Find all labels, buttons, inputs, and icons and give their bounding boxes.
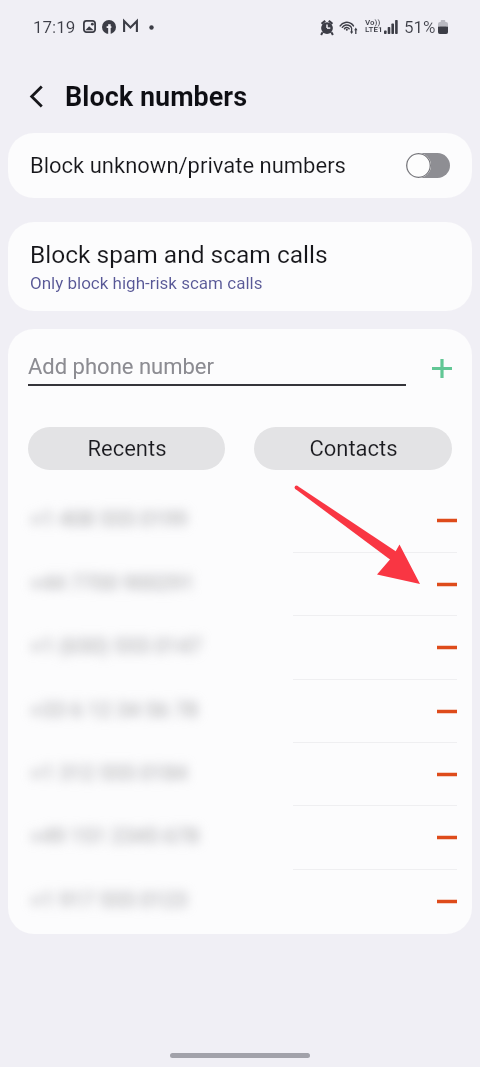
- staticText: +1 917 555 0123: [30, 888, 188, 913]
- button[interactable]: Add number: [420, 346, 464, 390]
- staticText: +44 7700 900291: [30, 571, 194, 596]
- staticText: +33 6 12 34 56 78: [30, 698, 198, 723]
- staticText: Contacts: [309, 436, 398, 462]
- button[interactable]: +1 408 555 0199: [8, 488, 472, 551]
- staticText: 17:19: [33, 17, 76, 37]
- button[interactable]: Remove number: [430, 694, 464, 728]
- staticText: Block numbers: [65, 81, 248, 113]
- staticText: +49 151 2345 678: [30, 824, 200, 849]
- button[interactable]: Contacts: [254, 427, 452, 470]
- staticText: +1 408 555 0199: [30, 507, 188, 532]
- button[interactable]: Remove number: [430, 503, 464, 537]
- button[interactable]: +1 312 555 0184: [8, 742, 472, 805]
- button[interactable]: Recents: [28, 427, 225, 470]
- button[interactable]: Remove number: [430, 884, 464, 918]
- button[interactable]: Remove number: [430, 630, 464, 664]
- button[interactable]: +44 7700 900291: [8, 552, 472, 615]
- staticText: +1 (650) 555 0147: [30, 634, 202, 659]
- button[interactable]: Remove number: [430, 757, 464, 791]
- button[interactable]: Block spam and scam calls: [8, 222, 472, 311]
- button[interactable]: Block unknown/private numbers: [8, 133, 472, 198]
- staticText: +1 312 555 0184: [30, 761, 188, 786]
- button[interactable]: +1 (650) 555 0147: [8, 615, 472, 678]
- button[interactable]: Remove number: [430, 567, 464, 601]
- button[interactable]: +49 151 2345 678: [8, 805, 472, 868]
- button[interactable]: Navigate up: [12, 72, 60, 120]
- button[interactable]: +1 917 555 0123: [8, 869, 472, 932]
- staticText: Add phone number: [28, 354, 214, 380]
- staticText: Only block high-risk scam calls: [30, 273, 263, 293]
- staticText: LTE1: [365, 25, 383, 34]
- staticText: Block spam and scam calls: [30, 240, 328, 269]
- staticText: Recents: [87, 436, 167, 462]
- button[interactable]: Remove number: [430, 820, 464, 854]
- staticText: 51%: [404, 17, 436, 37]
- staticText: Vo)): [365, 18, 381, 27]
- button[interactable]: +33 6 12 34 56 78: [8, 679, 472, 742]
- staticText: Block unknown/private numbers: [30, 153, 346, 179]
